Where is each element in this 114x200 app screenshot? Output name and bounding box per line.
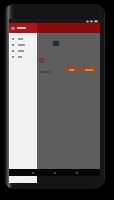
button[interactable] (9, 48, 37, 54)
button[interactable]: Open navigation drawer (11, 26, 15, 30)
button[interactable] (9, 54, 37, 60)
button[interactable] (9, 36, 37, 42)
button[interactable]: Back (30, 170, 35, 175)
button[interactable]: Home (52, 170, 57, 175)
button[interactable] (9, 42, 37, 48)
button[interactable]: Recents (74, 170, 79, 175)
button[interactable] (65, 67, 78, 72)
button[interactable] (81, 67, 96, 72)
